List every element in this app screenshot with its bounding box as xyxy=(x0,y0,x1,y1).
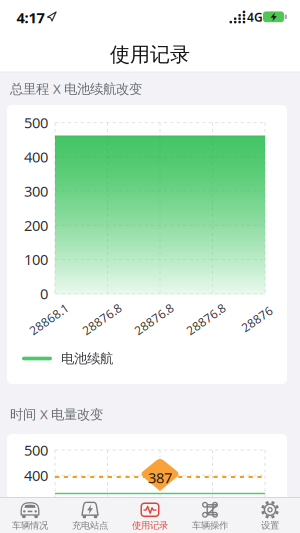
button[interactable]: 车辆操作 xyxy=(180,498,240,532)
staticText: 车辆情况 xyxy=(12,520,48,531)
staticText: 28876.8 xyxy=(79,311,124,327)
staticText: 4G xyxy=(247,9,263,25)
staticText: 0 xyxy=(40,284,48,303)
button[interactable]: 使用记录 xyxy=(120,498,180,532)
button[interactable]: 车辆情况 xyxy=(0,498,60,532)
staticText: 总里程 X 电池续航改变 xyxy=(10,80,142,97)
staticText: 400 xyxy=(24,147,48,167)
staticText: 100 xyxy=(24,250,48,269)
staticText: 充电站点 xyxy=(72,520,108,531)
button[interactable]: 充电站点 xyxy=(60,498,120,532)
staticText: 300 xyxy=(24,181,48,201)
staticText: 28876.8 xyxy=(131,311,176,327)
staticText: 500 xyxy=(24,113,48,132)
staticText: 电池续航 xyxy=(61,350,113,367)
staticText: 车辆操作 xyxy=(192,520,228,531)
staticText: 28876 xyxy=(239,311,274,327)
staticText: 时间 X 电量改变 xyxy=(10,405,103,423)
button[interactable]: 设置 xyxy=(240,498,300,532)
staticText: 4:17 xyxy=(16,8,44,27)
staticText: 400 xyxy=(24,466,48,485)
staticText: 28868.1 xyxy=(26,311,71,327)
staticText: 使用记录 xyxy=(110,42,190,67)
staticText: 使用记录 xyxy=(132,520,168,531)
staticText: 设置 xyxy=(261,520,279,531)
staticText: 200 xyxy=(24,215,48,235)
staticText: 387 xyxy=(148,468,172,487)
staticText: 28876.8 xyxy=(183,311,228,327)
staticText: 500 xyxy=(24,440,48,460)
